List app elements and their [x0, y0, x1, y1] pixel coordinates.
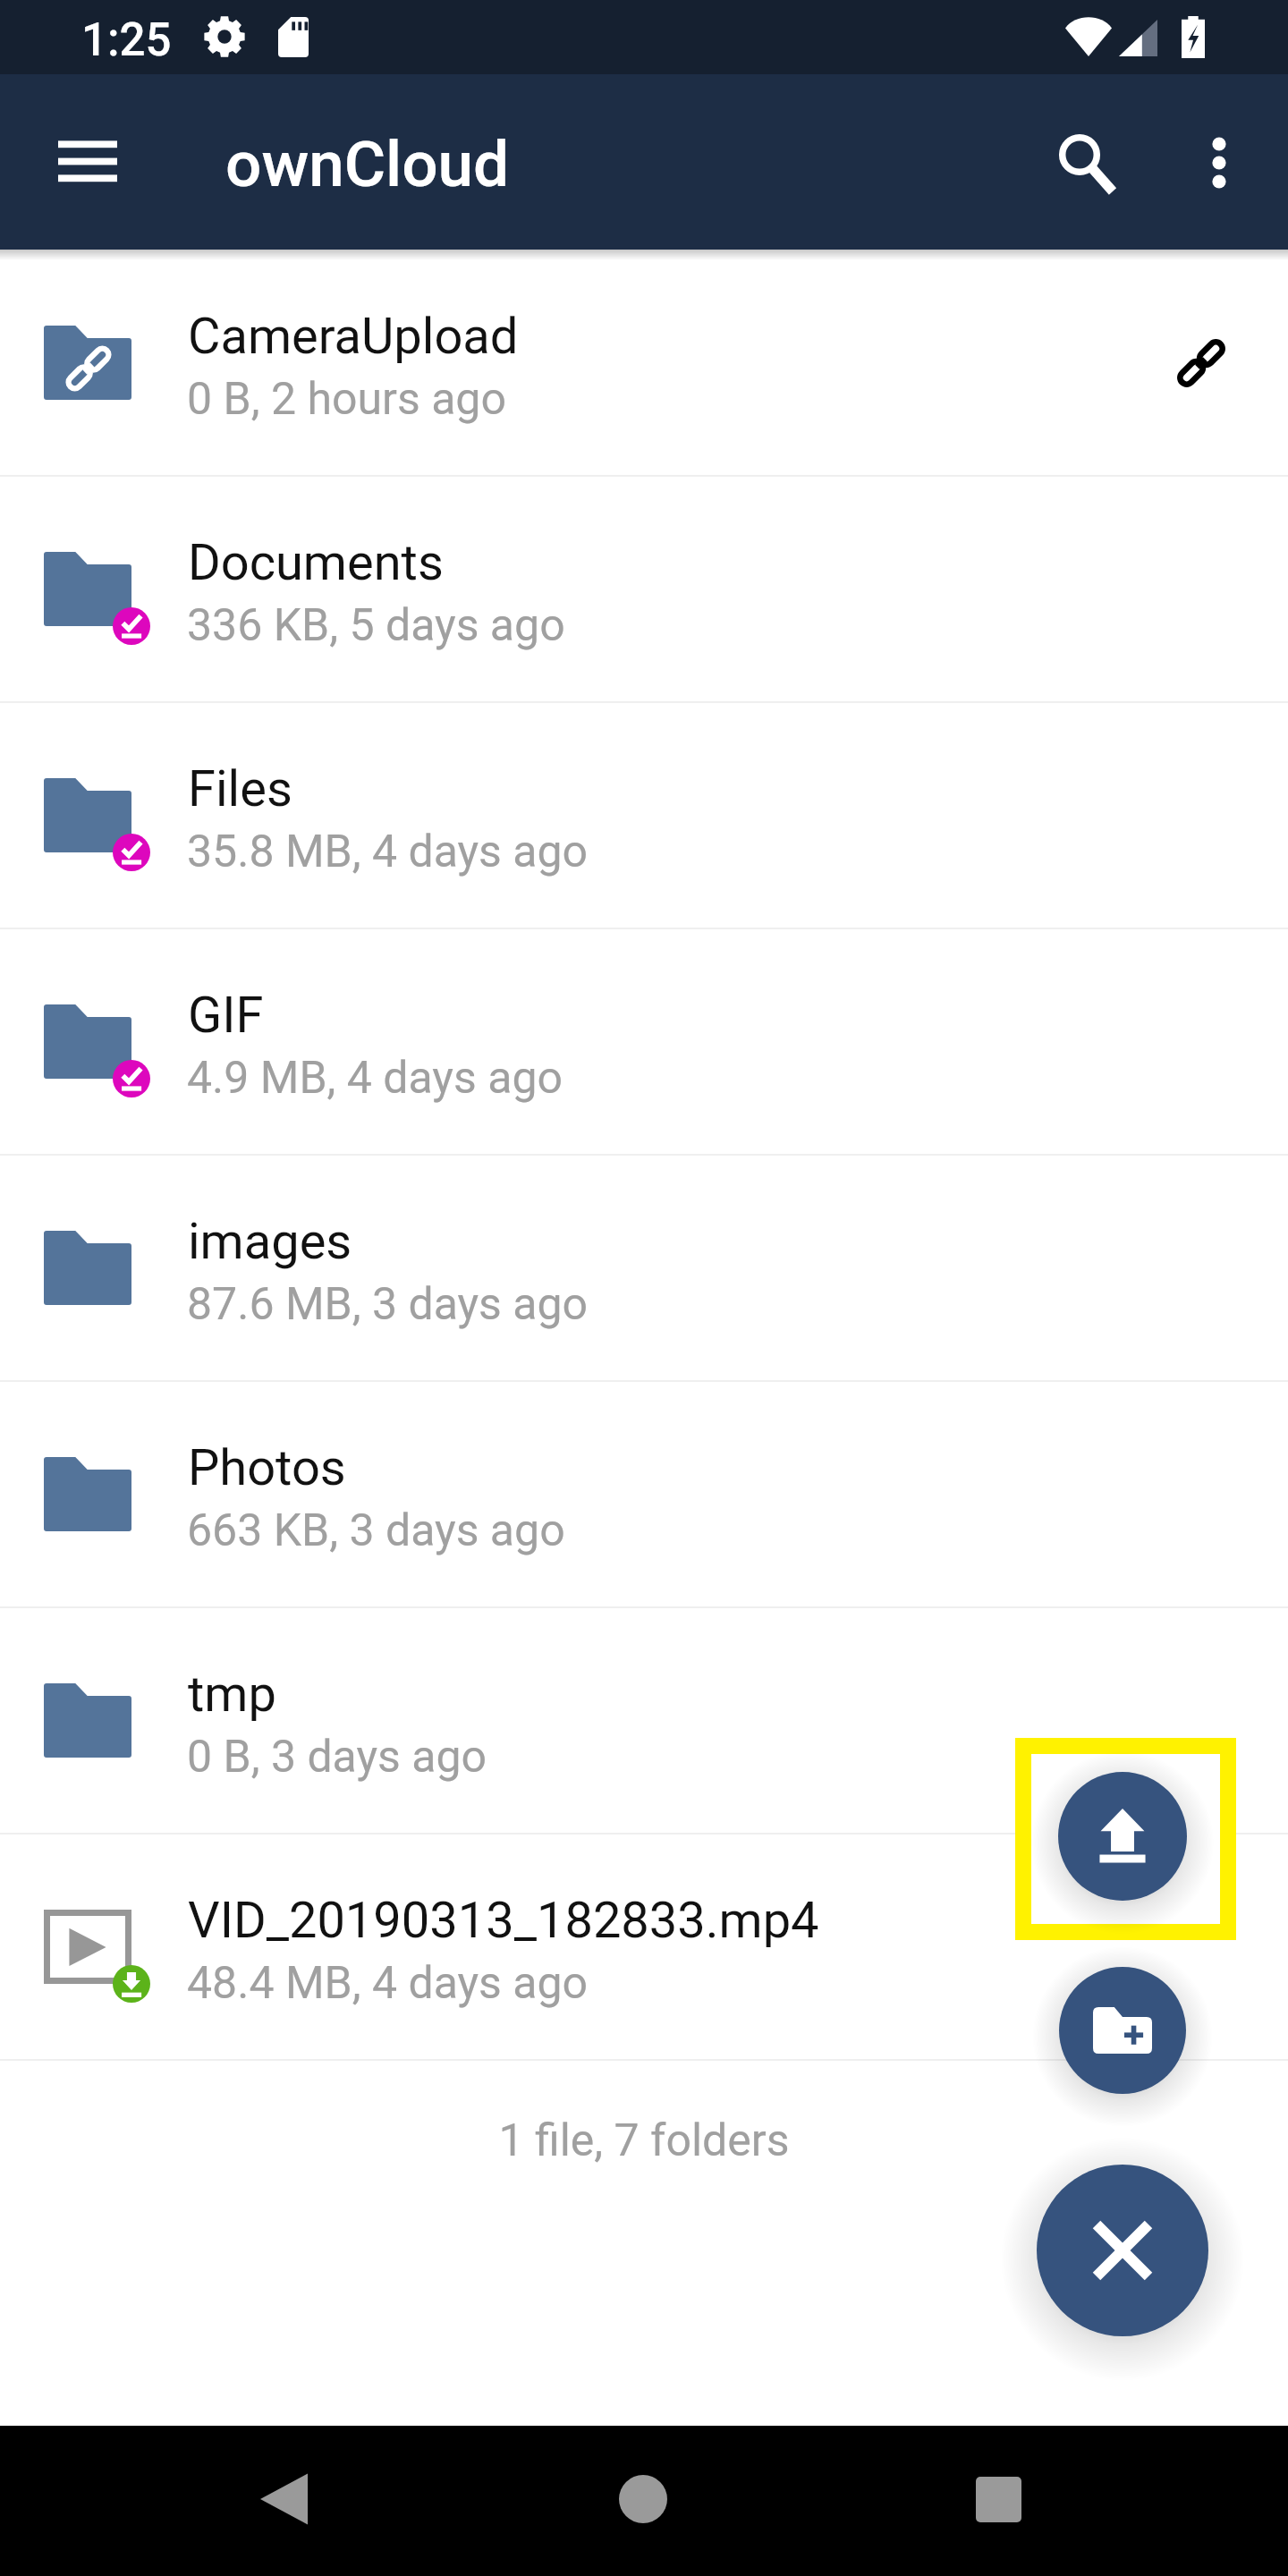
button[interactable]: Shared by link	[1153, 315, 1250, 411]
staticText: 35.8 MB, 4 days ago	[187, 826, 589, 878]
staticText: 0 B, 2 hours ago	[187, 373, 506, 426]
button[interactable]: images	[0, 1155, 1288, 1381]
button[interactable]: Upload file	[1058, 1772, 1187, 1901]
button[interactable]: Search	[1039, 117, 1122, 199]
staticText: 4.9 MB, 4 days ago	[187, 1052, 563, 1105]
staticText: Photos	[188, 1438, 346, 1497]
button[interactable]: GIF	[0, 928, 1288, 1155]
staticText: 48.4 MB, 4 days ago	[187, 1957, 589, 2010]
button[interactable]: Open navigation drawer	[47, 123, 128, 203]
button[interactable]: VID_20190313_182833.mp4	[0, 1834, 1288, 2060]
staticText: Documents	[188, 533, 444, 592]
staticText: 1:25	[81, 13, 172, 67]
button[interactable]: More options	[1179, 124, 1259, 205]
staticText: GIF	[188, 986, 264, 1045]
button[interactable]: Documents	[0, 476, 1288, 702]
staticText: tmp	[188, 1665, 276, 1724]
staticText: 87.6 MB, 3 days ago	[187, 1278, 589, 1331]
staticText: 1 file, 7 folders	[0, 2114, 1288, 2167]
button[interactable]: Close actions menu	[1037, 2165, 1208, 2336]
staticText: Files	[188, 759, 292, 818]
staticText: ownCloud	[225, 127, 510, 201]
button[interactable]: tmp	[0, 1607, 1288, 1834]
staticText: 0 B, 3 days ago	[187, 1731, 487, 1784]
staticText: CameraUpload	[188, 307, 519, 366]
button[interactable]: CameraUpload	[0, 250, 1288, 476]
button[interactable]: Create new folder	[1059, 1967, 1186, 2094]
staticText: VID_20190313_182833.mp4	[188, 1891, 819, 1950]
staticText: 663 KB, 3 days ago	[187, 1504, 565, 1557]
button[interactable]: Photos	[0, 1381, 1288, 1607]
staticText: 336 KB, 5 days ago	[187, 599, 565, 652]
staticText: images	[188, 1212, 352, 1271]
button[interactable]: Files	[0, 702, 1288, 928]
